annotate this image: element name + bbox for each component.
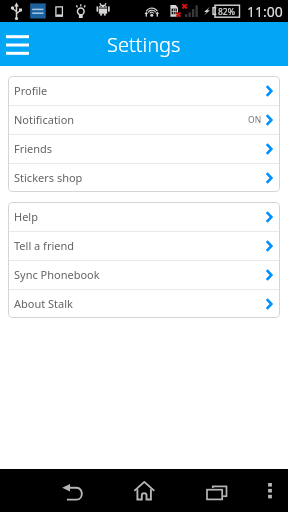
staticText: Tell a friend xyxy=(14,238,75,253)
staticText: 82% xyxy=(218,6,235,18)
button[interactable]: Menu xyxy=(0,22,36,66)
staticText: ON xyxy=(248,114,262,126)
staticText: Help xyxy=(14,209,38,224)
staticText: Stickers shop xyxy=(14,170,83,185)
staticText: About Stalk xyxy=(14,296,73,311)
button[interactable]: Profile xyxy=(8,76,280,105)
button[interactable]: Notification xyxy=(8,105,280,134)
staticText: Notification xyxy=(14,112,75,127)
button[interactable]: Friends xyxy=(8,134,280,163)
button[interactable]: About Stalk xyxy=(8,289,280,318)
button[interactable]: Tell a friend xyxy=(8,231,280,260)
button[interactable]: Help xyxy=(8,202,280,231)
staticText: Sync Phonebook xyxy=(14,267,100,282)
button[interactable]: More options xyxy=(254,469,286,512)
button[interactable]: Home xyxy=(122,469,166,512)
staticText: Friends xyxy=(14,141,53,156)
button[interactable]: Back xyxy=(50,469,94,512)
staticText: Settings xyxy=(107,31,181,58)
button[interactable]: Recent apps xyxy=(194,469,238,512)
staticText: 11:00 xyxy=(247,2,283,21)
button[interactable]: Sync Phonebook xyxy=(8,260,280,289)
button[interactable]: Stickers shop xyxy=(8,163,280,192)
staticText: Profile xyxy=(14,83,48,98)
